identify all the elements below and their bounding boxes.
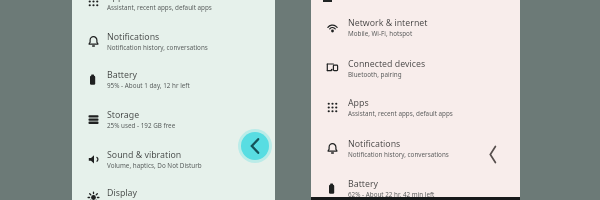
staticText: Notifications xyxy=(348,138,401,150)
staticText: Mobile, Wi-Fi, hotspot xyxy=(348,29,413,38)
staticText: Battery xyxy=(348,178,379,190)
staticText: Notification history, conversations xyxy=(348,150,449,159)
staticText: Connected devices xyxy=(348,58,426,70)
staticText: Notification history, conversations xyxy=(107,43,208,52)
button[interactable]: Battery xyxy=(311,169,520,200)
staticText: Apps xyxy=(348,97,369,109)
button[interactable] xyxy=(489,145,497,164)
staticText: Battery xyxy=(107,69,138,81)
staticText: 95% - About 1 day, 12 hr left xyxy=(107,81,190,90)
staticText: Bluetooth, pairing xyxy=(348,70,402,79)
staticText: Network & internet xyxy=(348,17,428,29)
staticText: Display xyxy=(107,187,138,199)
button[interactable]: Connected devices xyxy=(311,49,520,88)
button[interactable]: Apps xyxy=(72,0,275,21)
staticText: Apps xyxy=(107,0,128,3)
button[interactable]: Sound & vibration xyxy=(72,140,275,179)
staticText: 25% used - 192 GB free xyxy=(107,121,176,130)
staticText: Storage xyxy=(107,109,140,121)
staticText: Notifications xyxy=(107,31,160,43)
staticText: Assistant, recent apps, default apps xyxy=(348,109,453,118)
staticText: Volume, haptics, Do Not Disturb xyxy=(107,161,202,170)
button[interactable] xyxy=(241,132,269,160)
button[interactable]: Apps xyxy=(311,88,520,127)
staticText: Sound & vibration xyxy=(107,149,182,161)
button[interactable]: Battery xyxy=(72,60,275,99)
staticText: 62% - About 22 hr, 42 min left xyxy=(348,190,435,199)
button[interactable]: Notifications xyxy=(72,22,275,61)
button[interactable]: Notifications xyxy=(311,129,520,168)
button[interactable]: Network & internet xyxy=(311,8,520,47)
button[interactable]: Display xyxy=(72,178,275,200)
staticText: Assistant, recent apps, default apps xyxy=(107,3,212,12)
button[interactable]: Storage xyxy=(72,100,275,139)
